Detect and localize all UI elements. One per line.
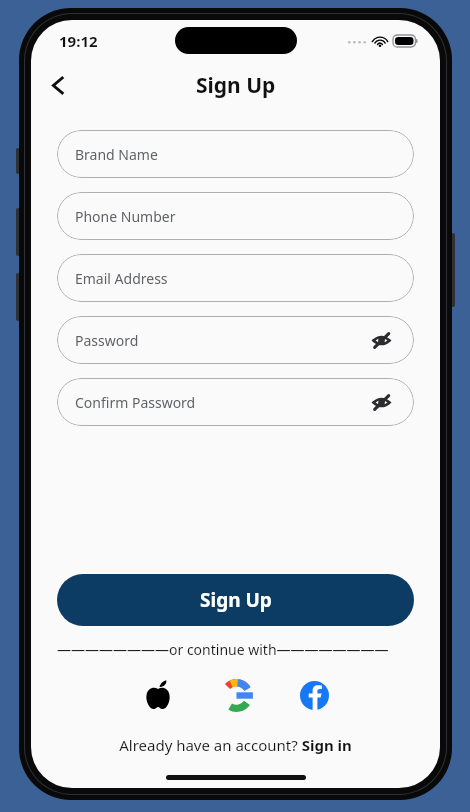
button[interactable]: Show password [366,387,396,417]
button[interactable]: Sign up with Apple [136,673,180,717]
staticText: Brand Name [75,145,158,164]
staticText: ————————or continue with———————— [57,640,389,659]
button[interactable]: Confirm Password [57,378,414,426]
staticText: Sign Up [196,71,276,100]
button[interactable]: Brand Name [57,130,414,178]
button[interactable]: Phone Number [57,192,414,240]
button[interactable]: Sign Up [57,574,414,626]
staticText: Already have an account? Sign in [119,735,352,755]
staticText: Password [75,331,139,350]
button[interactable]: Sign up with Google [214,673,258,717]
button[interactable]: Back [37,64,79,106]
staticText: 19:12 [59,31,98,51]
button[interactable]: Email Address [57,254,414,302]
staticText: Phone Number [75,207,176,226]
staticText: Sign Up [200,587,272,613]
staticText: Email Address [75,269,168,288]
staticText: Confirm Password [75,393,196,412]
button[interactable]: Already have an account? Sign in [111,733,360,757]
button[interactable]: Password [57,316,414,364]
button[interactable]: Sign up with Facebook [292,673,336,717]
button[interactable]: Show password [366,325,396,355]
